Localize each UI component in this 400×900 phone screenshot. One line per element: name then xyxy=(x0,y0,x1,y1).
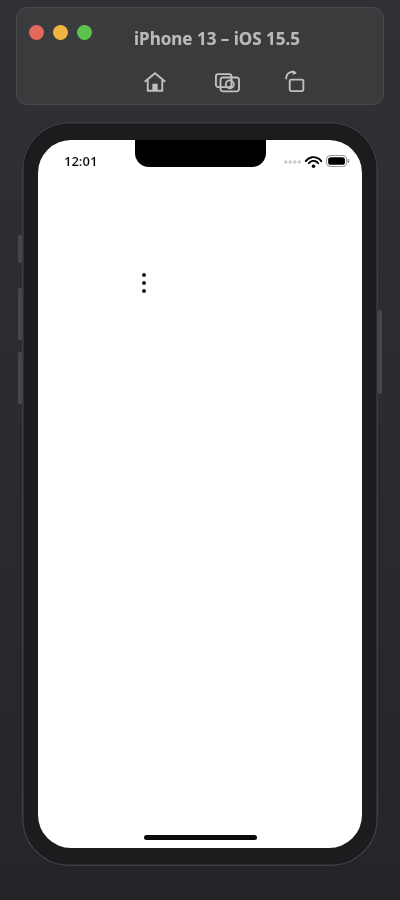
button[interactable]: More options xyxy=(130,266,158,300)
button[interactable]: Home xyxy=(140,67,170,97)
button[interactable]: Close xyxy=(29,25,44,40)
button[interactable]: Zoom xyxy=(77,25,92,40)
staticText: 12:01 xyxy=(64,152,98,170)
button[interactable]: Screenshot xyxy=(211,67,243,97)
button[interactable]: Rotate xyxy=(280,65,310,97)
staticText: iPhone 13 – iOS 15.5 xyxy=(134,27,300,50)
button[interactable]: Minimize xyxy=(53,25,68,40)
